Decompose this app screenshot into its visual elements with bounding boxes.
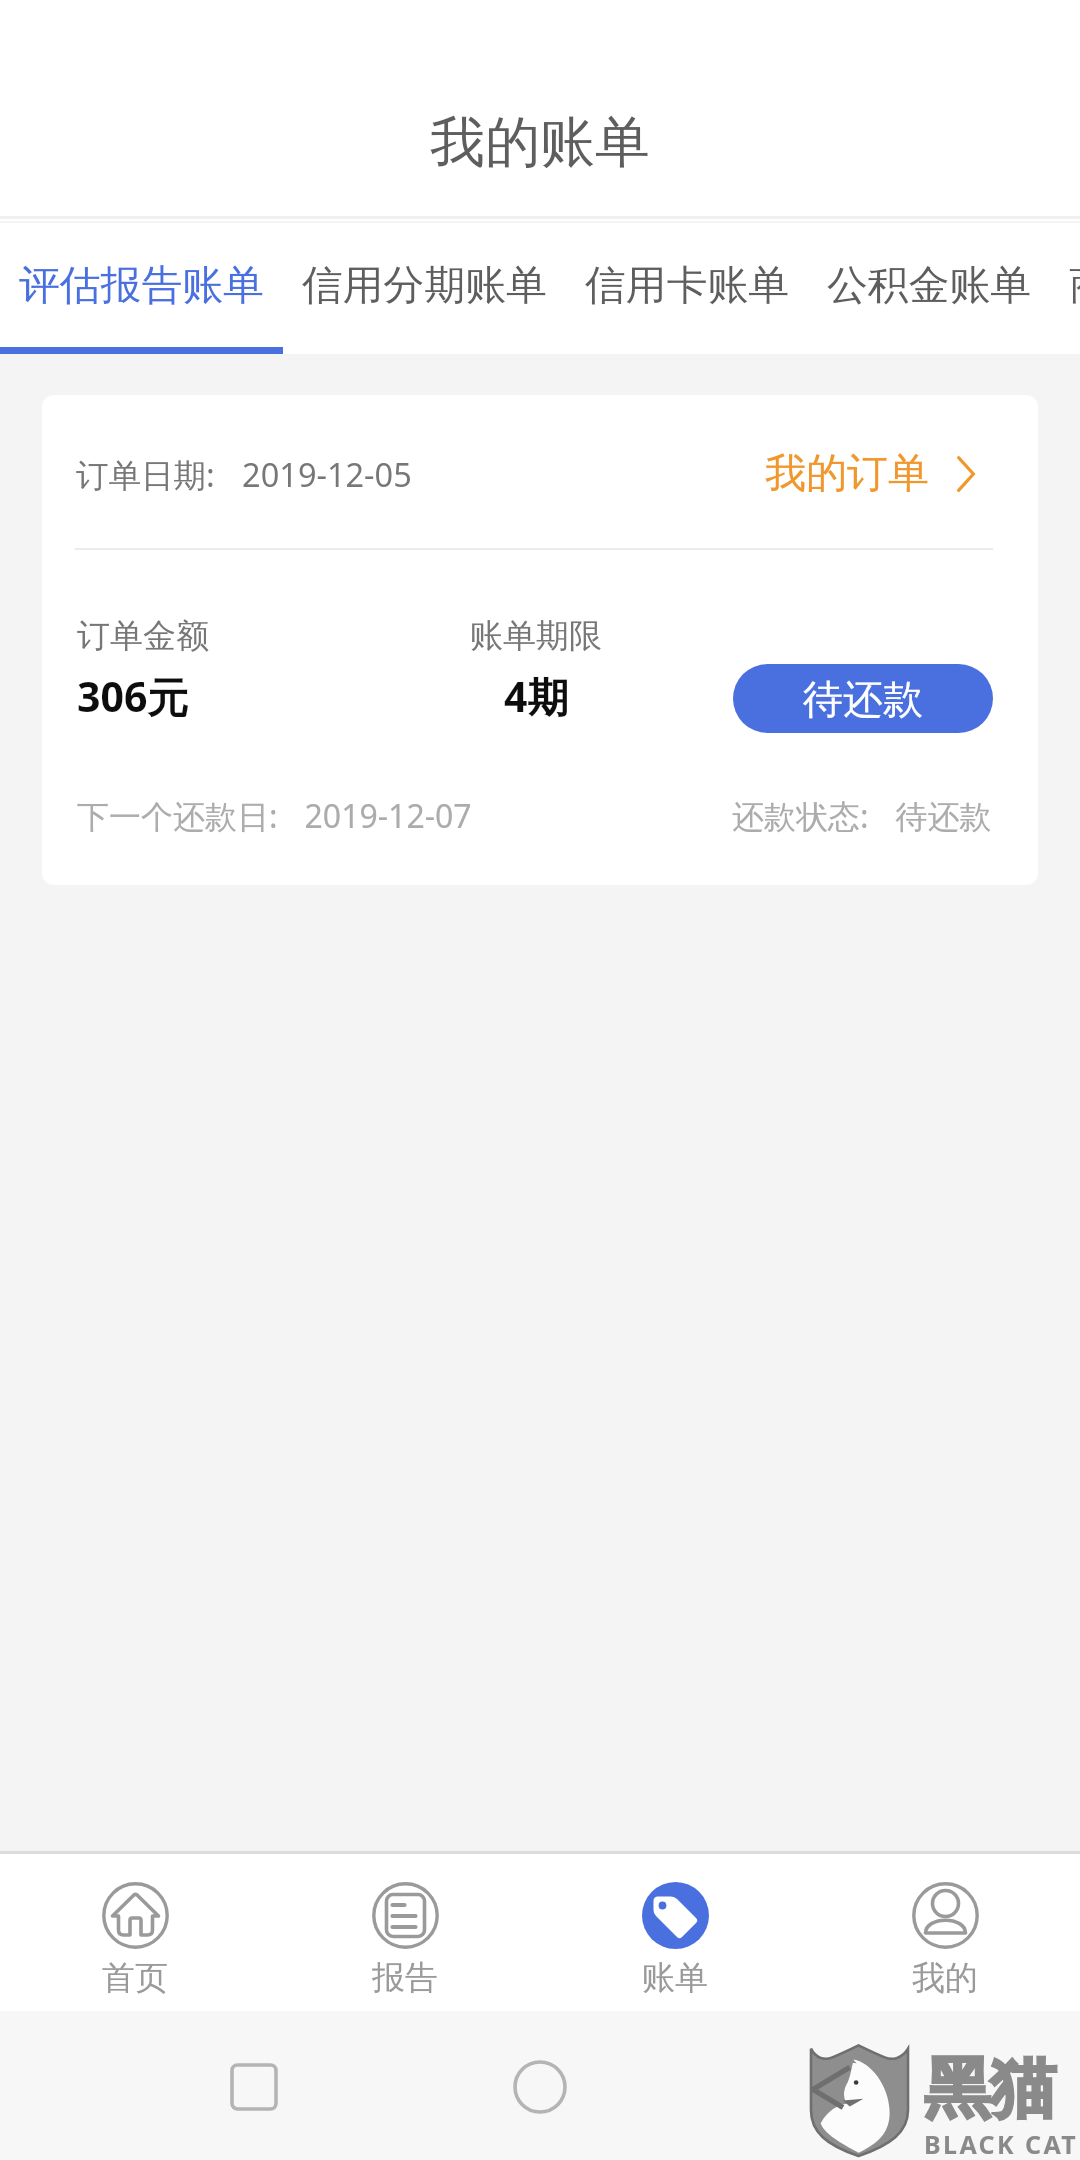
staticText: 评估报告账单 xyxy=(19,260,264,311)
staticText: 商务账单 xyxy=(1069,260,1080,311)
staticText: 信用分期账单 xyxy=(302,260,547,311)
staticText: 账单 xyxy=(642,1957,708,1999)
staticText: 我的账单 xyxy=(430,108,650,177)
button[interactable]: 我的 xyxy=(810,1854,1080,2011)
staticText: 首页 xyxy=(102,1957,168,1999)
button[interactable]: 商务账单 xyxy=(1050,223,1080,354)
button[interactable]: 报告 xyxy=(270,1854,540,2011)
button[interactable]: 订单日期: 2019-12-05 xyxy=(42,395,1038,885)
staticText: BLACK CAT xyxy=(924,2127,1079,2160)
staticText: 订单日期: 2019-12-05 xyxy=(76,452,412,496)
button[interactable]: 信用卡账单 xyxy=(566,223,808,354)
staticText: 报告 xyxy=(372,1957,438,1999)
staticText: 账单期限 xyxy=(470,615,602,657)
staticText: 公积金账单 xyxy=(827,260,1031,311)
staticText: 4期 xyxy=(504,668,569,724)
staticText: 信用卡账单 xyxy=(585,260,789,311)
button[interactable]: 公积金账单 xyxy=(808,223,1050,354)
button[interactable]: 待还款 xyxy=(733,664,993,733)
staticText: 我的订单 xyxy=(765,448,929,500)
staticText: 黑猫 xyxy=(924,2047,1056,2130)
button[interactable]: 账单 xyxy=(540,1854,810,2011)
staticText: 订单金额 xyxy=(77,615,209,657)
staticText: 我的 xyxy=(912,1957,978,1999)
button[interactable]: 信用分期账单 xyxy=(283,223,566,354)
button[interactable]: 我的订单 xyxy=(765,448,975,500)
button[interactable]: 首页 xyxy=(0,1854,270,2011)
staticText: 306元 xyxy=(77,668,189,724)
staticText: 还款状态: 待还款 xyxy=(732,794,992,838)
staticText: 下一个还款日: 2019-12-07 xyxy=(77,794,472,838)
button[interactable]: 评估报告账单 xyxy=(0,223,283,354)
staticText: 待还款 xyxy=(803,674,923,724)
